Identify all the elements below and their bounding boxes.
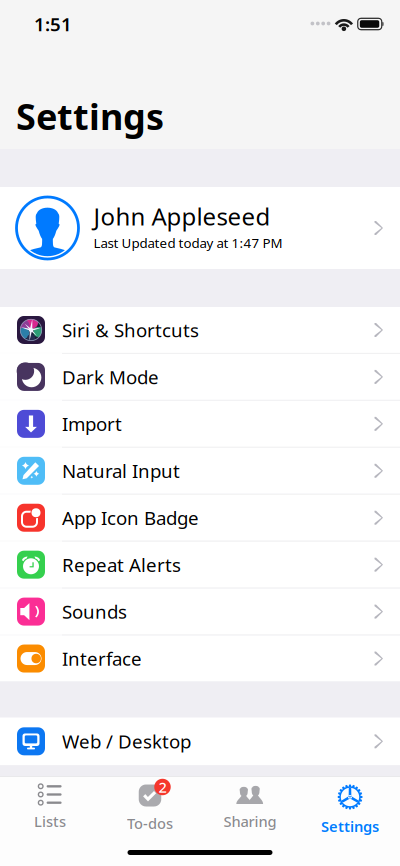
staticText: Dark Mode [62,364,159,389]
button[interactable]: Import [0,401,400,447]
staticText: Siri & Shortcuts [62,318,199,342]
button[interactable]: Interface [0,636,400,681]
staticText: Web / Desktop [62,729,191,754]
staticText: Last Updated today at 1:47 PM [93,234,282,252]
staticText: App Icon Badge [62,505,199,530]
button[interactable]: Sharing [200,776,300,831]
staticText: Settings [321,816,379,836]
button[interactable]: John Appleseed [0,187,400,269]
staticText: Sharing [223,811,276,831]
button[interactable]: Dark Mode [0,354,400,400]
button[interactable]: Natural Input [0,448,400,494]
button[interactable]: Repeat Alerts [0,542,400,588]
staticText: Import [62,411,122,436]
button[interactable]: Sounds [0,589,400,634]
staticText: John Appleseed [93,200,270,232]
button[interactable]: 2 [100,776,200,833]
staticText: Sounds [62,599,127,624]
button[interactable]: Lists [0,776,100,831]
button[interactable]: Siri & Shortcuts [0,307,400,353]
staticText: 2 [158,777,166,797]
button[interactable]: App Icon Badge [0,495,400,541]
staticText: To-dos [127,813,173,833]
button[interactable]: Web / Desktop [0,717,400,765]
button[interactable]: Settings [300,776,400,836]
staticText: Settings [16,92,164,140]
staticText: 1:51 [34,12,72,36]
staticText: Repeat Alerts [62,552,181,577]
staticText: Natural Input [62,458,180,483]
staticText: Lists [34,811,66,831]
staticText: Interface [62,646,142,671]
